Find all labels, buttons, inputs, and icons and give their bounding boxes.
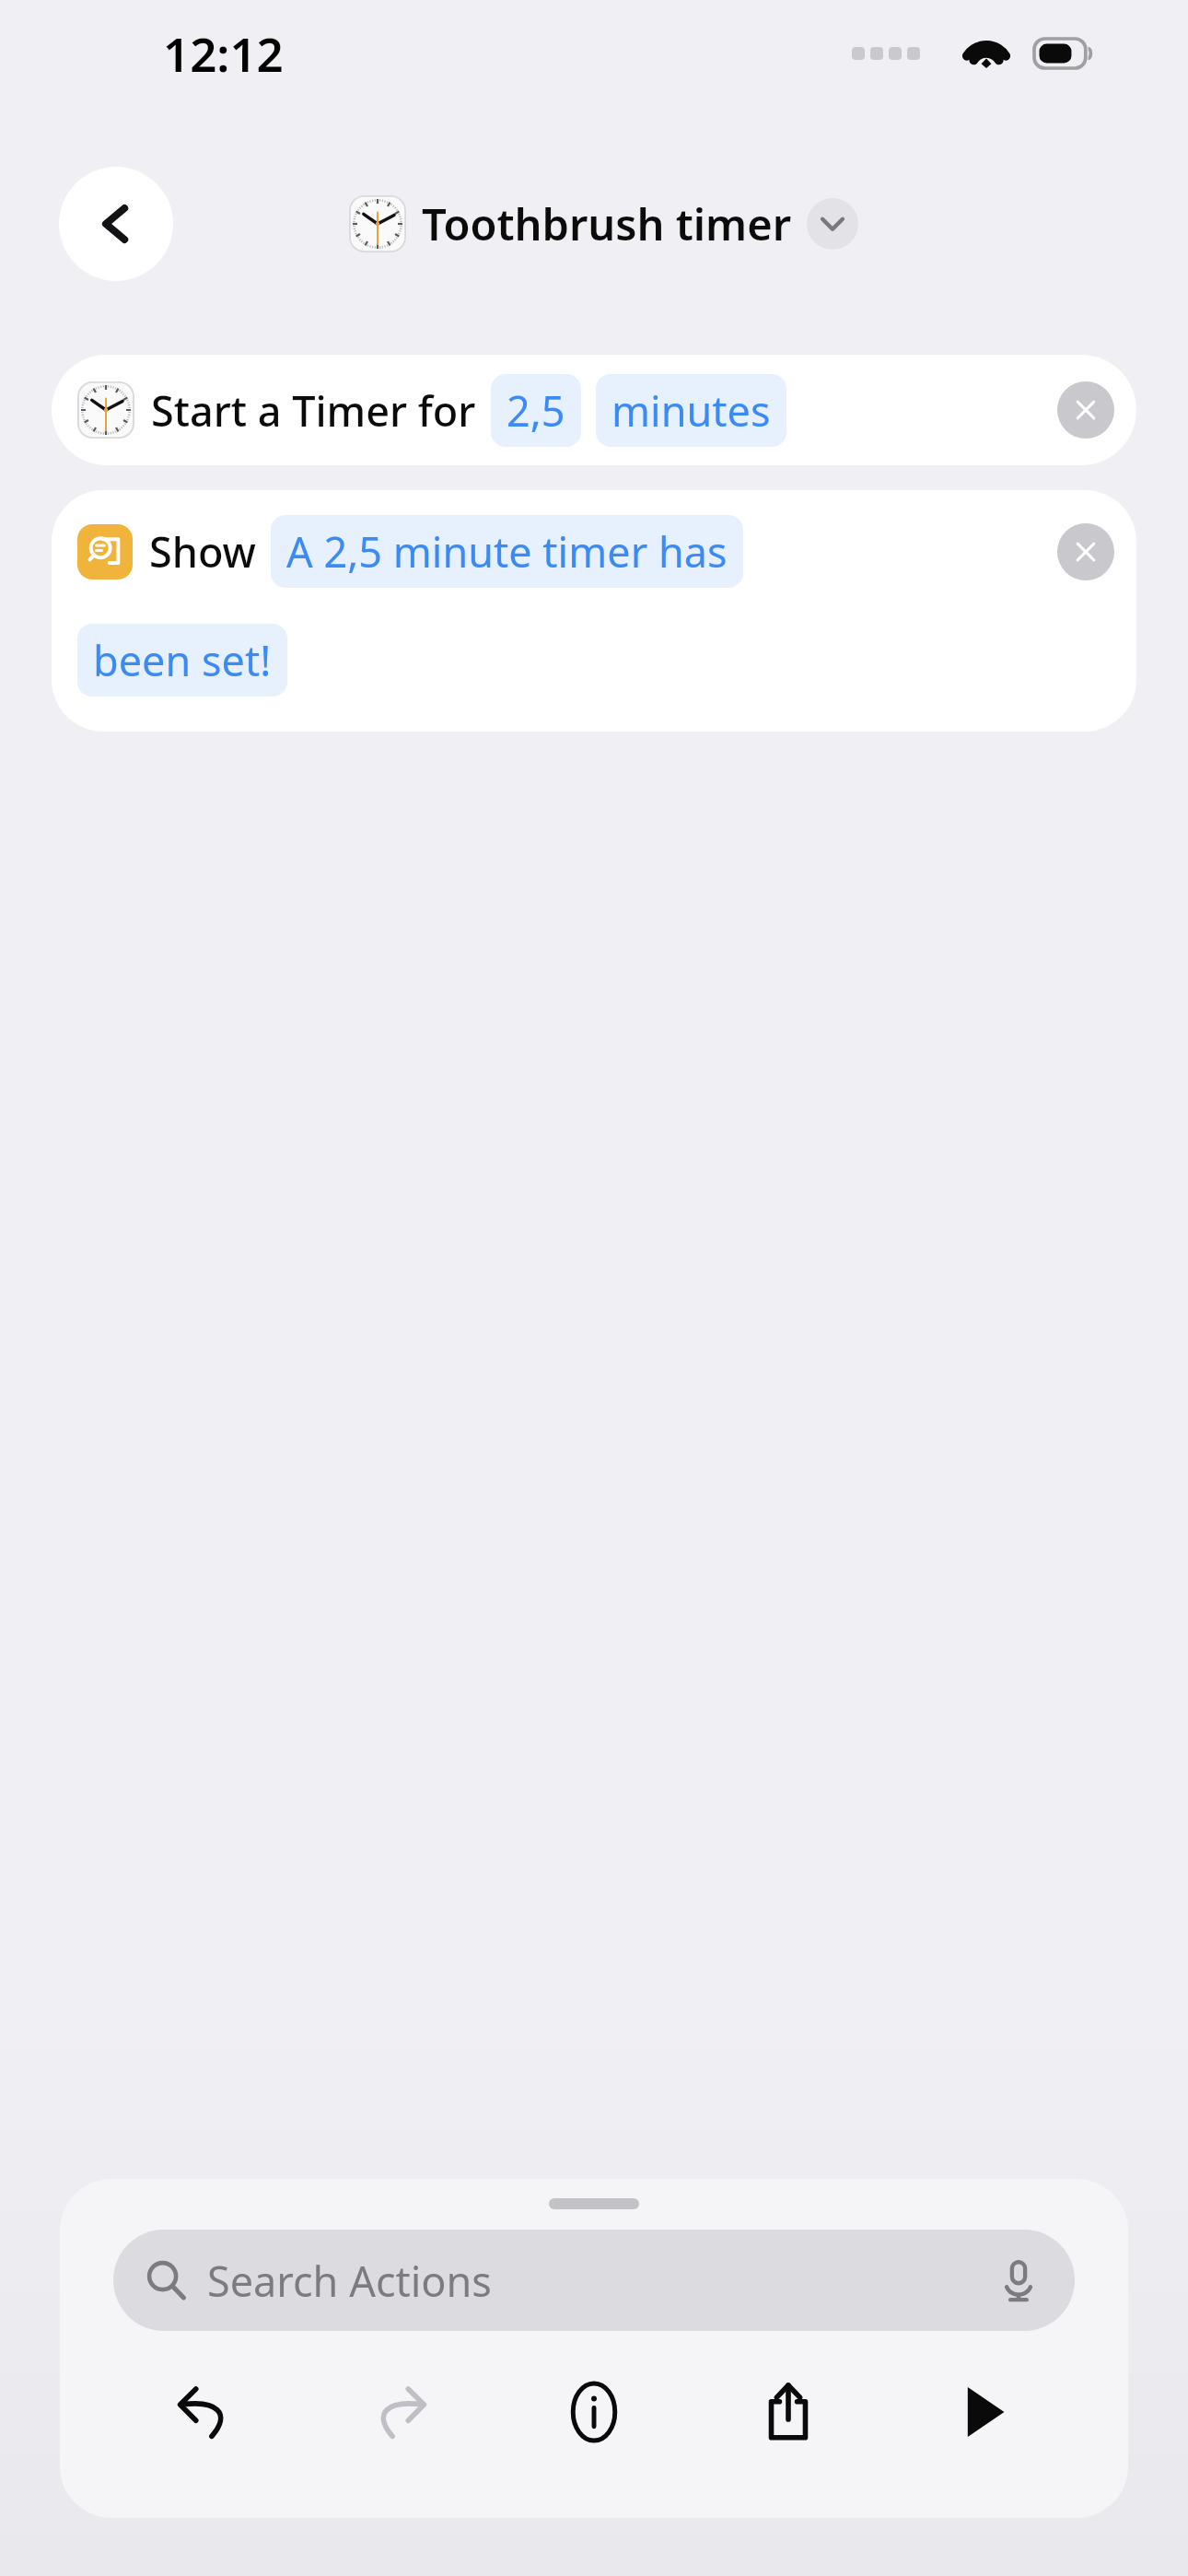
- staticText: Search Actions: [207, 2253, 492, 2309]
- button[interactable]: Search Actions: [113, 2230, 1075, 2331]
- button[interactable]: Back: [59, 167, 173, 281]
- staticText: 2,5: [507, 382, 565, 439]
- staticText: minutes: [611, 382, 771, 439]
- button[interactable]: Remove action: [1057, 381, 1114, 439]
- button[interactable]: Details: [544, 2362, 644, 2462]
- staticText: 12:12: [163, 21, 284, 85]
- staticText: A 2,5 minute timer has: [286, 523, 728, 580]
- button[interactable]: Undo: [155, 2362, 254, 2462]
- button[interactable]: Remove action: [1057, 523, 1114, 580]
- button[interactable]: 2,5: [491, 374, 581, 447]
- button[interactable]: A 2,5 minute timer has: [271, 515, 743, 588]
- button[interactable]: Show: [52, 490, 1136, 732]
- button[interactable]: Run shortcut: [934, 2362, 1033, 2462]
- button[interactable]: Toothbrush timer: [349, 194, 858, 253]
- button[interactable]: minutes: [596, 374, 786, 447]
- button[interactable]: Redo: [350, 2362, 449, 2462]
- button[interactable]: been set!: [77, 624, 287, 697]
- staticText: Start a Timer for: [151, 382, 476, 439]
- button[interactable]: Share: [739, 2362, 838, 2462]
- button[interactable]: Start a Timer for: [52, 355, 1136, 465]
- staticText: Show: [149, 523, 256, 580]
- button[interactable]: Voice search: [996, 2257, 1042, 2303]
- staticText: been set!: [93, 632, 272, 688]
- button[interactable]: Show shortcut options: [807, 198, 858, 250]
- staticText: Toothbrush timer: [422, 194, 792, 253]
